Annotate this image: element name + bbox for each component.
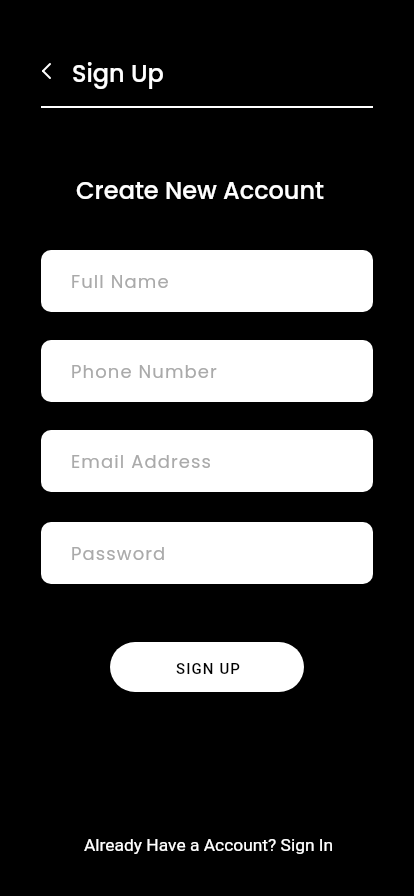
button[interactable]: Already Have a Account? Sign In — [78, 832, 340, 858]
staticText: SIGN UP — [176, 660, 241, 678]
button[interactable]: Phone Number — [41, 340, 373, 402]
staticText: Full Name — [71, 269, 170, 294]
button[interactable]: Password — [41, 522, 373, 584]
staticText: Sign Up — [72, 57, 164, 91]
staticText: Create New Account — [0, 174, 407, 208]
button[interactable]: Email Address — [41, 430, 373, 492]
staticText: Email Address — [71, 449, 213, 474]
button[interactable]: SIGN UP — [110, 642, 304, 692]
staticText: Already Have a Account? Sign In — [84, 835, 334, 855]
button[interactable]: Full Name — [41, 250, 373, 312]
staticText: Password — [71, 541, 167, 566]
button[interactable]: Back — [33, 55, 59, 87]
staticText: Phone Number — [71, 359, 218, 384]
